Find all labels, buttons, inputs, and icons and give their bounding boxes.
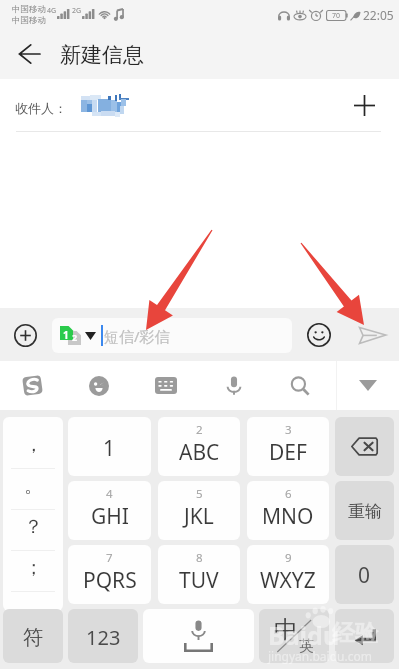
button[interactable]: 4 <box>68 481 151 540</box>
staticText: 符 <box>23 625 43 650</box>
button[interactable]: Search <box>278 361 322 410</box>
button[interactable]: 0 <box>335 545 394 604</box>
staticText: 2 <box>72 331 78 343</box>
button[interactable]: 9 <box>247 545 329 604</box>
button[interactable]: 3 <box>247 417 329 476</box>
staticText: ， <box>24 433 43 457</box>
staticText: 新建信息 <box>60 42 144 68</box>
staticText: 重输 <box>348 501 382 522</box>
button[interactable]: Back <box>0 29 58 79</box>
button[interactable]: Send <box>357 323 387 347</box>
staticText: 4G <box>47 6 57 16</box>
staticText: JKL <box>184 502 214 531</box>
staticText: 4 <box>106 486 113 502</box>
button[interactable]: Sogou input method <box>10 361 54 410</box>
staticText: 123 <box>86 624 121 651</box>
staticText: ； <box>24 556 43 580</box>
staticText: 。 <box>24 474 43 498</box>
button[interactable]: Switch Chinese English <box>259 609 329 663</box>
button[interactable]: 123 <box>68 609 138 663</box>
staticText: 7 <box>106 550 113 566</box>
button[interactable]: Voice input <box>212 361 256 410</box>
staticText: 短信/彩信 <box>104 326 170 346</box>
button[interactable]: 符 <box>3 609 63 663</box>
button[interactable]: Add recipient <box>341 79 387 131</box>
button[interactable]: 5 <box>158 481 240 540</box>
button[interactable]: Backspace <box>335 417 394 476</box>
staticText: 22:05 <box>363 7 394 23</box>
staticText: GHI <box>91 502 129 531</box>
staticText: 0 <box>358 561 371 590</box>
staticText: 1 <box>63 328 69 342</box>
staticText: 收件人： <box>15 100 67 116</box>
staticText: 2 <box>196 422 203 438</box>
staticText: 经验 <box>332 619 378 648</box>
staticText: 5 <box>196 486 203 502</box>
staticText: 中 <box>274 615 298 645</box>
button[interactable]: 1 <box>68 417 151 476</box>
staticText: ABC <box>179 438 220 467</box>
staticText: 3 <box>285 422 292 438</box>
staticText: 2G <box>72 6 82 16</box>
staticText: 8 <box>196 550 203 566</box>
staticText: DEF <box>269 438 307 467</box>
button[interactable]: ， <box>3 427 63 468</box>
staticText: MNO <box>262 502 314 531</box>
button[interactable]: Hide keyboard <box>346 361 390 410</box>
staticText: 中国移动 <box>12 15 46 26</box>
button[interactable]: Keyboard layout <box>144 361 188 410</box>
staticText: Baidu <box>268 618 340 652</box>
button[interactable]: Space or voice input <box>143 609 254 663</box>
staticText: jingyan.baidu.com <box>268 648 372 664</box>
staticText: 中国移动 <box>12 4 46 15</box>
button[interactable]: ？ <box>3 509 63 550</box>
staticText: 英 <box>299 637 314 656</box>
button[interactable]: Add attachment <box>12 322 38 348</box>
button[interactable]: Enter <box>335 609 394 663</box>
button[interactable]: Emoji <box>77 361 121 410</box>
button[interactable]: 1 <box>52 318 292 353</box>
staticText: 9 <box>285 550 292 566</box>
staticText: PQRS <box>83 566 137 595</box>
staticText: 6 <box>285 486 292 502</box>
button[interactable]: 重输 <box>335 481 394 540</box>
button[interactable]: ； <box>3 550 63 591</box>
button[interactable]: 。 <box>3 468 63 509</box>
staticText: 1 <box>103 434 116 463</box>
staticText: WXYZ <box>260 566 316 595</box>
staticText: TUV <box>179 566 219 595</box>
button[interactable]: 7 <box>68 545 151 604</box>
staticText: ？ <box>24 515 43 539</box>
staticText: 70 <box>332 11 341 21</box>
button[interactable]: 8 <box>158 545 240 604</box>
button[interactable]: 2 <box>158 417 240 476</box>
button[interactable]: 6 <box>247 481 329 540</box>
button[interactable]: Emoji <box>307 323 331 347</box>
